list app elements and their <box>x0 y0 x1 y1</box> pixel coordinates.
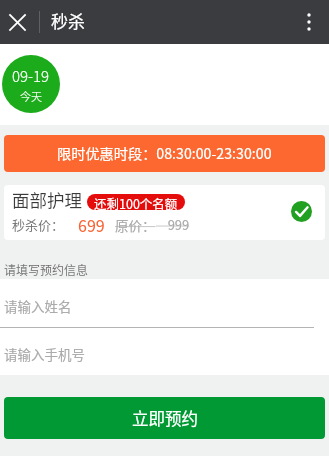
staticText: 请输入手机号 <box>4 344 85 364</box>
staticText: 立即预约 <box>132 406 198 430</box>
button[interactable]: Selected <box>291 201 312 222</box>
staticText: 699 <box>78 213 105 236</box>
staticText: 请填写预约信息 <box>4 261 89 278</box>
staticText: 09-19 <box>12 65 50 87</box>
staticText: 限时优惠时段：08:30:00-23:30:00 <box>57 143 272 164</box>
staticText: 原价： <box>115 215 156 235</box>
staticText: 秒杀 <box>51 8 85 33</box>
button[interactable]: 限时优惠时段：08:30:00-23:30:00 <box>4 135 325 172</box>
staticText: 还剩100个名额 <box>94 194 178 210</box>
button[interactable]: 09-19 <box>2 55 60 113</box>
staticText: 请输入姓名 <box>4 296 72 316</box>
button[interactable]: More options <box>295 8 323 36</box>
staticText: 秒杀价： <box>12 215 65 234</box>
button[interactable]: Close <box>3 8 31 36</box>
staticText: 999 <box>156 215 190 234</box>
button[interactable]: 请输入手机号 <box>0 328 329 375</box>
staticText: 今天 <box>20 88 42 104</box>
staticText: 面部护理 <box>12 187 82 212</box>
button[interactable]: 请输入姓名 <box>0 279 329 328</box>
button[interactable]: 面部护理 <box>4 185 325 240</box>
button[interactable]: 立即预约 <box>4 397 325 439</box>
